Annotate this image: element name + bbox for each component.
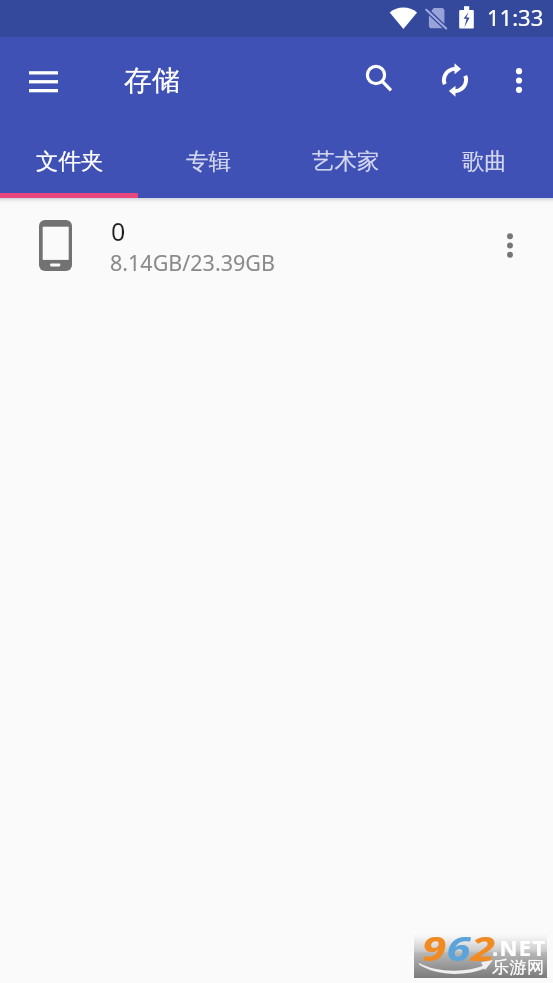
staticText: 艺术家 xyxy=(312,147,380,175)
staticText: 歌曲 xyxy=(462,147,507,175)
staticText: 6 xyxy=(446,925,471,971)
staticText: .NET xyxy=(492,932,547,962)
button[interactable]: Refresh xyxy=(431,56,479,104)
button[interactable]: 艺术家 xyxy=(277,127,415,195)
staticText: 2 xyxy=(471,925,495,971)
staticText: 11:33 xyxy=(487,2,544,32)
staticText: 8.14GB/23.39GB xyxy=(110,248,275,277)
staticText: 专辑 xyxy=(186,147,231,175)
staticText: 9 xyxy=(422,925,446,971)
button[interactable]: 专辑 xyxy=(139,127,277,195)
button[interactable]: Item options xyxy=(486,221,534,269)
button[interactable]: More options xyxy=(495,56,543,104)
button[interactable]: Open navigation menu xyxy=(19,58,67,106)
staticText: 文件夹 xyxy=(36,147,104,175)
staticText: 乐游网 xyxy=(492,957,545,978)
staticText: 0 xyxy=(111,214,126,248)
staticText: 存储 xyxy=(124,63,180,98)
button[interactable]: 0 xyxy=(0,198,553,290)
button[interactable]: 文件夹 xyxy=(0,127,139,195)
button[interactable]: Search xyxy=(353,52,401,100)
button[interactable]: 歌曲 xyxy=(415,127,553,195)
